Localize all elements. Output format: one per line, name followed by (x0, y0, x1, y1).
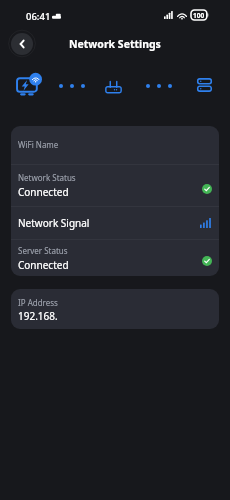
staticText: Connected (18, 258, 69, 272)
staticText: Network Status (18, 172, 76, 183)
button[interactable]: IP Address (11, 289, 219, 329)
staticText: IP Address (18, 297, 58, 308)
staticText: 06:41 (26, 10, 51, 23)
staticText: Network Signal (18, 216, 90, 230)
button[interactable]: Network Status (11, 165, 219, 206)
staticText: Server Status (18, 245, 68, 256)
button[interactable]: Network Signal (11, 207, 219, 239)
staticText: Network Settings (69, 37, 161, 51)
button[interactable]: WiFi Name (11, 126, 219, 164)
staticText: Connected (18, 185, 69, 199)
staticText: WiFi Name (18, 139, 59, 150)
button[interactable]: Back (11, 33, 33, 55)
staticText: 100 (193, 11, 205, 20)
staticText: 192.168. (18, 309, 58, 323)
button[interactable]: Server Status (11, 240, 219, 276)
